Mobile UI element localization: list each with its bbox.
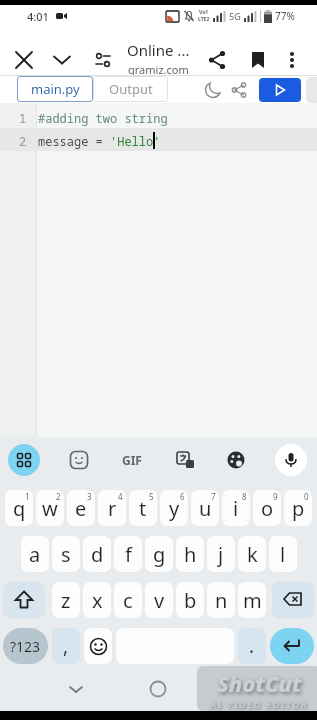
button[interactable]: GIF	[118, 446, 146, 474]
button[interactable]	[224, 448, 248, 472]
button[interactable]: c	[114, 582, 142, 618]
button[interactable]	[283, 51, 301, 69]
staticText: 1	[19, 110, 27, 126]
staticText: b	[184, 587, 197, 614]
button[interactable]: f	[114, 536, 142, 572]
button[interactable]: v	[145, 582, 173, 618]
button[interactable]	[275, 444, 307, 476]
staticText: 9	[273, 491, 278, 502]
staticText: z	[61, 587, 71, 614]
button[interactable]: e	[67, 490, 95, 526]
button[interactable]: ,	[52, 628, 80, 664]
button[interactable]: Output	[93, 76, 168, 102]
button[interactable]	[173, 448, 197, 472]
staticText: y	[169, 495, 180, 522]
button[interactable]	[207, 50, 227, 70]
button[interactable]: g	[145, 536, 173, 572]
button[interactable]: m	[238, 582, 266, 618]
staticText: s	[61, 541, 71, 568]
button[interactable]	[84, 628, 112, 664]
staticText: u	[199, 495, 212, 522]
staticText: ,	[63, 633, 69, 659]
button[interactable]: p	[284, 490, 312, 526]
staticText: q	[13, 495, 26, 522]
button[interactable]	[272, 582, 314, 618]
button[interactable]: l	[269, 536, 297, 572]
button[interactable]: q	[5, 490, 33, 526]
staticText: 3	[87, 491, 92, 502]
button[interactable]: a	[21, 536, 49, 572]
staticText: o	[261, 495, 274, 522]
staticText: i	[233, 495, 239, 522]
button[interactable]: b	[176, 582, 204, 618]
staticText: d	[91, 541, 104, 568]
staticText: 2	[19, 133, 27, 149]
button[interactable]	[231, 82, 247, 98]
staticText: .	[249, 633, 255, 659]
button[interactable]: main.py	[17, 76, 93, 102]
staticText: ShotCut	[217, 668, 302, 698]
staticText: f	[125, 541, 132, 568]
button[interactable]	[8, 444, 40, 476]
staticText: 1	[25, 491, 30, 502]
button[interactable]	[149, 680, 167, 698]
button[interactable]	[270, 628, 314, 664]
staticText: 4:01	[27, 9, 49, 24]
staticText: 2	[56, 491, 61, 502]
staticText: Vo1	[199, 9, 209, 16]
button[interactable]	[50, 48, 74, 72]
button[interactable]: s	[52, 536, 80, 572]
staticText: 5G	[229, 10, 241, 22]
button[interactable]: t	[129, 490, 157, 526]
staticText: n	[215, 587, 228, 614]
staticText: 6	[180, 491, 185, 502]
staticText: e	[75, 495, 87, 522]
staticText: 77%	[275, 9, 295, 23]
button[interactable]: z	[52, 582, 80, 618]
staticText: w	[42, 495, 58, 522]
staticText: p	[292, 495, 305, 522]
button[interactable]: u	[191, 490, 219, 526]
button[interactable]: ?123	[3, 628, 48, 664]
staticText: 5	[149, 491, 154, 502]
button[interactable]: k	[238, 536, 266, 572]
staticText: Output	[109, 80, 153, 98]
button[interactable]: o	[253, 490, 281, 526]
button[interactable]	[12, 48, 36, 72]
staticText: 0	[304, 491, 309, 502]
button[interactable]	[66, 679, 86, 699]
staticText: 7	[211, 491, 216, 502]
button[interactable]	[249, 51, 267, 69]
button[interactable]	[3, 582, 45, 618]
button[interactable]: x	[83, 582, 111, 618]
staticText: LTE2	[198, 16, 210, 23]
button[interactable]	[67, 448, 91, 472]
staticText: k	[247, 541, 258, 568]
staticText: a	[29, 541, 41, 568]
button[interactable]: j	[207, 536, 235, 572]
staticText: m	[243, 587, 262, 614]
staticText: gramiz.com	[128, 62, 189, 75]
button[interactable]	[204, 81, 222, 99]
button[interactable]: h	[176, 536, 204, 572]
staticText: ?123	[10, 637, 41, 656]
staticText: 4	[118, 491, 123, 502]
button[interactable]: w	[36, 490, 64, 526]
staticText: j	[218, 541, 224, 568]
button[interactable]	[259, 78, 301, 102]
button[interactable]: d	[83, 536, 111, 572]
staticText: main.py	[31, 80, 80, 98]
button[interactable]: n	[207, 582, 235, 618]
staticText: Online ...	[127, 40, 190, 60]
button[interactable]: r	[98, 490, 126, 526]
staticText: c	[123, 587, 133, 614]
staticText: l	[280, 541, 286, 568]
staticText: t	[139, 495, 147, 522]
staticText: AI VIDEO EDITOR	[210, 698, 309, 710]
button[interactable]: .	[238, 628, 266, 664]
button[interactable]: i	[222, 490, 250, 526]
button[interactable]: y	[160, 490, 188, 526]
staticText: 8	[242, 491, 247, 502]
button[interactable]	[95, 52, 111, 68]
